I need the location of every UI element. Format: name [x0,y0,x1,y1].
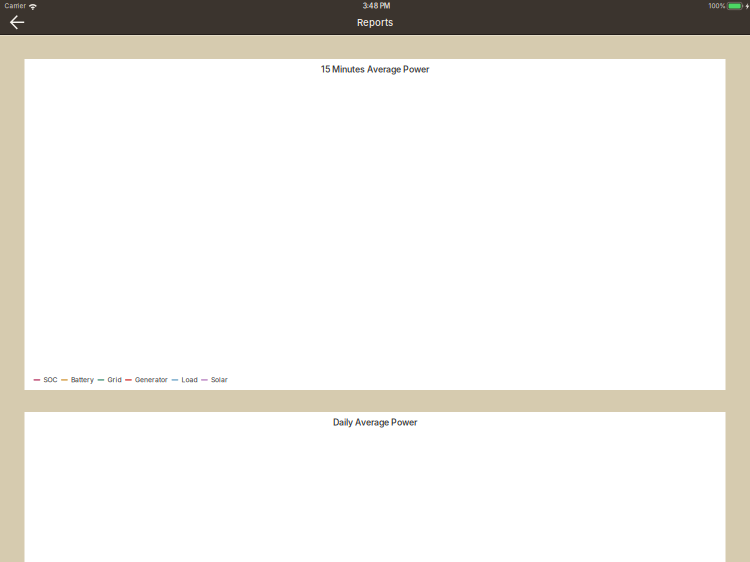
staticText: Grid [107,376,121,384]
staticText: Generator [135,376,168,384]
staticText: 100% [708,2,725,10]
staticText: Reports [357,17,393,28]
staticText: Solar [211,376,228,384]
staticText: Load [181,376,197,384]
staticText: 3:48 PM [363,2,390,10]
button[interactable]: Back [0,12,34,34]
staticText: Daily Average Power [333,417,417,428]
staticText: Battery [71,376,94,384]
staticText: 15 Minutes Average Power [321,64,429,75]
staticText: Carrier [4,2,25,10]
staticText: SOC [43,376,57,384]
